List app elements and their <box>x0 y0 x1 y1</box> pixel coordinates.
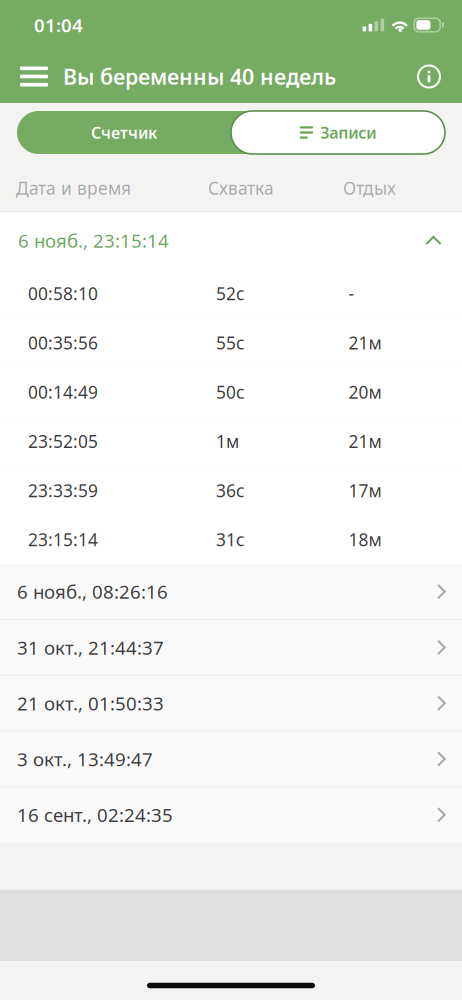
staticText: Счетчик <box>91 122 157 143</box>
button[interactable]: 3 окт., 13:49:47 <box>0 732 462 786</box>
button[interactable]: Записи <box>231 111 445 154</box>
staticText: 21 окт., 01:50:33 <box>17 691 164 716</box>
staticText: 21м <box>348 331 381 354</box>
staticText: 23:15:14 <box>28 528 98 551</box>
staticText: 23:33:59 <box>28 479 98 502</box>
staticText: Схватка <box>208 176 274 199</box>
staticText: 6 нояб., 08:26:16 <box>17 579 168 604</box>
staticText: 31с <box>216 528 245 551</box>
staticText: Отдых <box>343 176 396 199</box>
staticText: 20м <box>348 380 381 403</box>
staticText: 21м <box>348 430 381 453</box>
staticText: 6 нояб., 23:15:14 <box>18 228 169 253</box>
staticText: 3 окт., 13:49:47 <box>17 747 153 771</box>
staticText: 31 окт., 21:44:37 <box>17 635 164 660</box>
staticText: Вы беременны 40 недель <box>63 62 336 91</box>
button[interactable]: Information <box>407 51 451 101</box>
staticText: 50с <box>216 380 245 403</box>
staticText: 01:04 <box>34 13 83 37</box>
staticText: 00:35:56 <box>28 331 98 354</box>
button[interactable]: 21 окт., 01:50:33 <box>0 676 462 731</box>
button[interactable]: 6 нояб., 23:15:14 <box>0 212 462 269</box>
staticText: 52с <box>216 282 245 305</box>
button[interactable]: 31 окт., 21:44:37 <box>0 620 462 675</box>
button[interactable]: 6 нояб., 08:26:16 <box>0 564 462 619</box>
staticText: 55с <box>216 331 245 354</box>
staticText: 00:58:10 <box>28 282 98 305</box>
button[interactable]: Счетчик <box>17 111 231 154</box>
button[interactable]: Menu <box>10 51 58 101</box>
staticText: 18м <box>348 528 381 551</box>
staticText: Дата и время <box>16 176 131 199</box>
button[interactable]: 16 сент., 02:24:35 <box>0 787 462 842</box>
staticText: 00:14:49 <box>28 380 98 403</box>
staticText: 36с <box>216 479 245 502</box>
staticText: 23:52:05 <box>28 430 98 453</box>
staticText: 1м <box>216 430 239 453</box>
staticText: - <box>348 282 354 305</box>
staticText: 16 сент., 02:24:35 <box>17 802 173 827</box>
staticText: 17м <box>348 479 381 502</box>
staticText: Записи <box>320 122 376 143</box>
